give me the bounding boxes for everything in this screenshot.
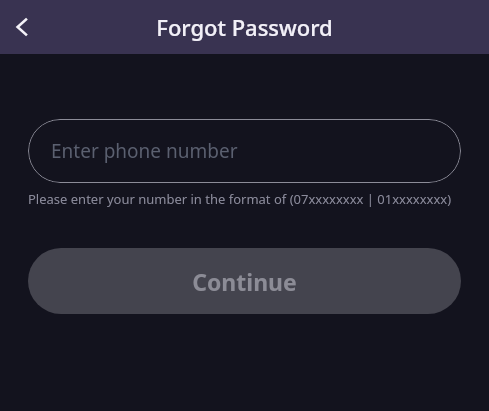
staticText: Enter phone number bbox=[51, 138, 238, 164]
staticText: Continue bbox=[192, 266, 297, 297]
staticText: Forgot Password bbox=[156, 12, 333, 42]
button[interactable]: Enter phone number bbox=[28, 119, 461, 183]
button[interactable]: Continue bbox=[28, 248, 461, 314]
staticText: Please enter your number in the format o… bbox=[28, 190, 452, 208]
button[interactable]: Back bbox=[4, 9, 40, 45]
